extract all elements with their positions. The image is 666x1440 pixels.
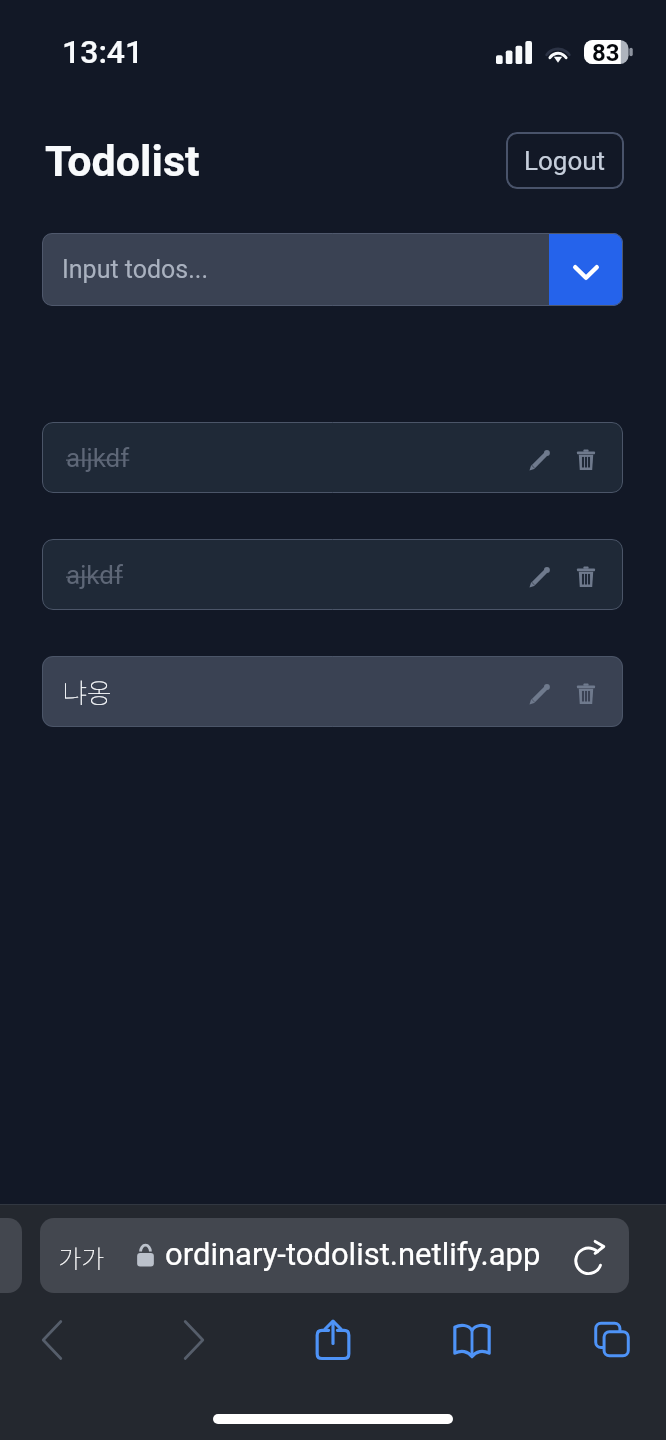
button[interactable]: Delete — [563, 669, 609, 715]
staticText: Input todos... — [62, 255, 209, 284]
button[interactable]: Reload — [562, 1231, 614, 1283]
button[interactable]: Previous tab — [0, 1218, 22, 1293]
button[interactable]: Back — [18, 1306, 86, 1374]
button[interactable]: Edit — [515, 669, 561, 715]
staticText: Todolist — [45, 136, 200, 186]
button[interactable]: Delete — [563, 552, 609, 598]
button[interactable]: 냐옹 — [42, 656, 623, 727]
button[interactable]: Logout — [506, 132, 624, 189]
staticText: 냐옹 — [62, 672, 515, 711]
staticText: 13:41 — [62, 33, 144, 71]
staticText: ordinary-todolist.netlify.app — [165, 1236, 541, 1272]
button[interactable]: Edit — [515, 435, 561, 481]
button[interactable]: Add todo — [549, 233, 623, 306]
button[interactable]: Bookmarks — [438, 1306, 506, 1374]
button[interactable]: Tabs — [578, 1306, 646, 1374]
staticText: ajkdf — [66, 560, 515, 590]
button[interactable]: 가가 — [40, 1218, 629, 1293]
button[interactable]: ajkdf — [42, 539, 623, 610]
staticText: 가가 — [58, 1239, 105, 1275]
button[interactable]: aljkdf — [42, 422, 623, 493]
staticText: Logout — [524, 146, 606, 176]
staticText: aljkdf — [66, 443, 515, 473]
button[interactable]: Edit — [515, 552, 561, 598]
button[interactable]: Delete — [563, 435, 609, 481]
button[interactable]: Forward — [160, 1306, 228, 1374]
staticText: 83 — [592, 39, 620, 63]
button[interactable]: Share — [299, 1306, 367, 1374]
button[interactable]: Input todos... — [42, 233, 549, 306]
